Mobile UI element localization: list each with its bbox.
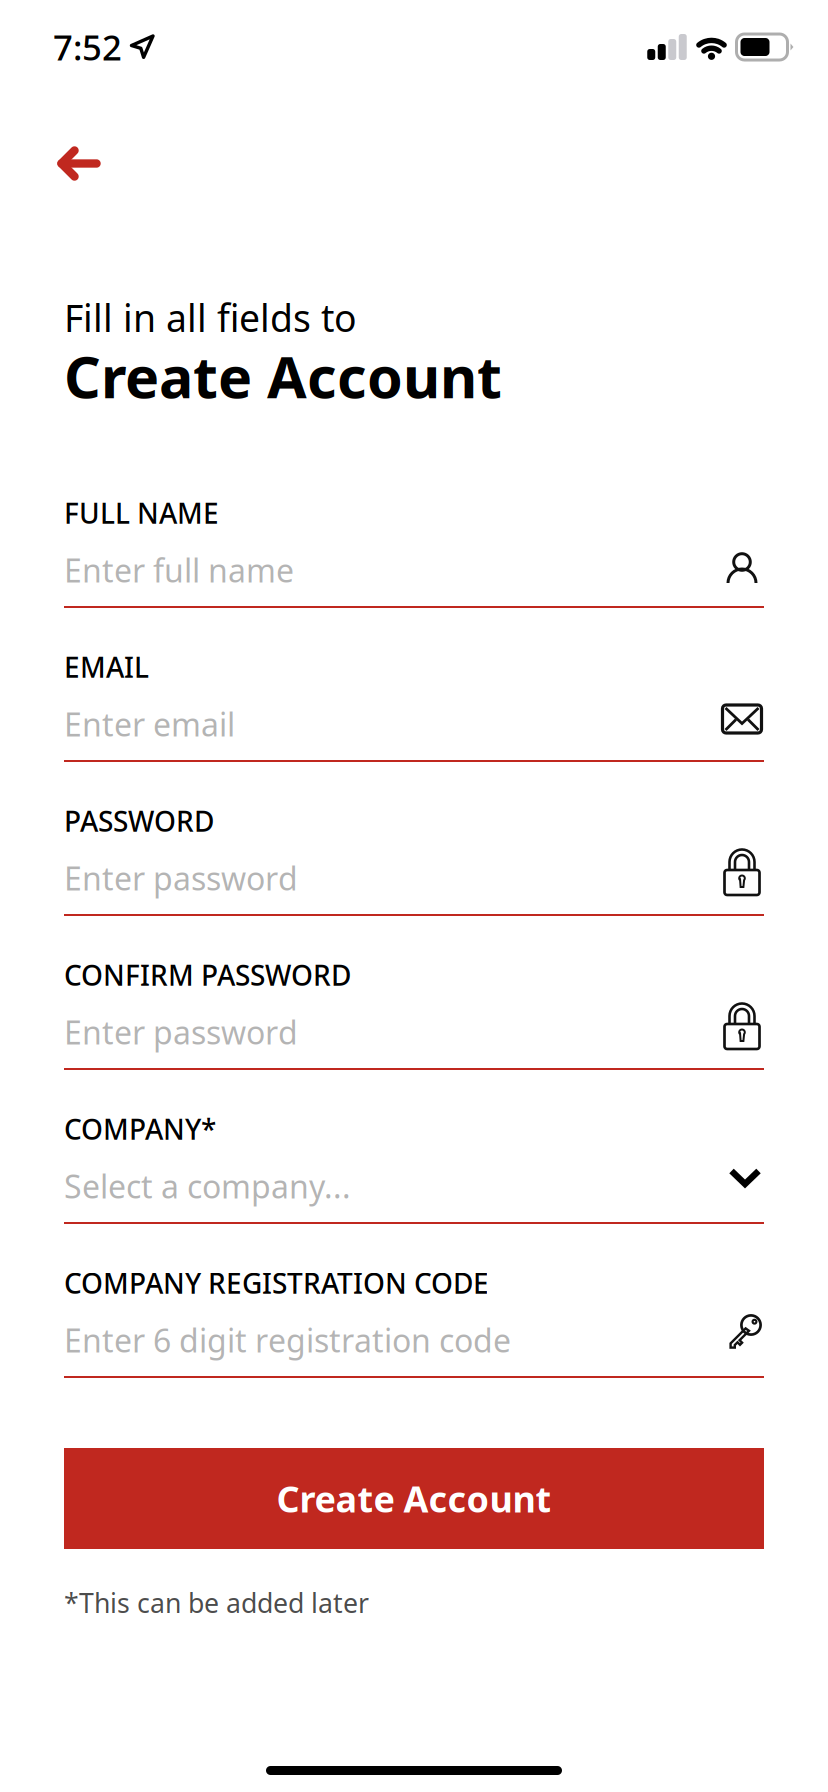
staticText: Fill in all fields to [64, 293, 357, 342]
staticText: COMPANY* [64, 1110, 216, 1148]
staticText: Create Account [276, 1475, 551, 1522]
button[interactable]: Back [0, 94, 125, 202]
staticText: Create Account [64, 338, 502, 414]
staticText: Enter full name [64, 549, 294, 591]
staticText: Select a company... [64, 1165, 351, 1207]
staticText: 7:52 [53, 24, 122, 70]
staticText: *This can be added later [64, 1585, 369, 1620]
button[interactable]: PASSWORD [64, 800, 764, 916]
button[interactable]: Create Account [64, 1448, 764, 1549]
button[interactable]: EMAIL [64, 646, 764, 762]
button[interactable]: CONFIRM PASSWORD [64, 954, 764, 1070]
staticText: Enter password [64, 1011, 298, 1053]
button[interactable]: COMPANY* [64, 1108, 764, 1224]
staticText: Enter email [64, 703, 235, 745]
staticText: COMPANY REGISTRATION CODE [64, 1264, 489, 1302]
staticText: EMAIL [64, 648, 149, 686]
button[interactable]: FULL NAME [64, 492, 764, 608]
button[interactable]: COMPANY REGISTRATION CODE [64, 1262, 764, 1378]
staticText: CONFIRM PASSWORD [64, 956, 351, 994]
staticText: Enter password [64, 857, 298, 899]
staticText: PASSWORD [64, 802, 214, 840]
staticText: Enter 6 digit registration code [64, 1319, 511, 1361]
staticText: FULL NAME [64, 494, 219, 532]
